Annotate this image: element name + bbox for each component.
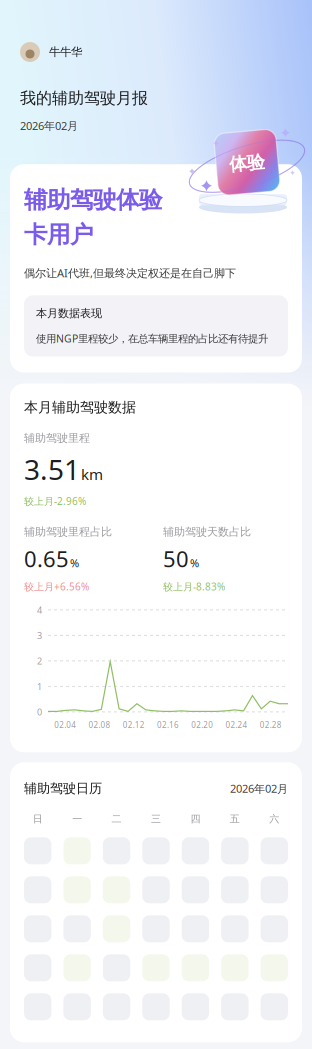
- staticText: 较上月-2.96%: [24, 494, 86, 508]
- staticText: km: [81, 464, 103, 484]
- staticText: 2: [37, 655, 42, 667]
- staticText: 卡用户: [24, 220, 93, 249]
- staticText: 辅助驾驶里程: [24, 431, 90, 445]
- staticText: %: [190, 555, 199, 571]
- staticText: 0: [37, 706, 42, 718]
- staticText: 四: [190, 813, 200, 825]
- staticText: 体验: [229, 152, 265, 175]
- staticText: 0.65: [24, 544, 69, 574]
- staticText: 2026年02月: [230, 781, 288, 796]
- staticText: 偶尔让AI代班,但最终决定权还是在自己脚下: [24, 265, 236, 280]
- staticText: 1: [37, 680, 42, 692]
- staticText: 本月辅助驾驶数据: [24, 398, 136, 416]
- staticText: 02.24: [226, 719, 248, 730]
- staticText: 02.16: [157, 719, 179, 730]
- button[interactable]: 牛牛华: [20, 42, 292, 62]
- staticText: 2026年02月: [20, 118, 78, 133]
- staticText: 02.28: [260, 719, 282, 730]
- staticText: 50: [163, 544, 189, 574]
- staticText: 较上月+6.56%: [24, 580, 89, 593]
- staticText: 辅助驾驶体验: [24, 185, 162, 215]
- staticText: 辅助驾驶里程占比: [24, 525, 112, 539]
- staticText: 02.08: [88, 719, 110, 730]
- staticText: 较上月-8.83%: [163, 580, 225, 593]
- staticText: 4: [37, 604, 42, 616]
- staticText: 3: [37, 629, 42, 641]
- staticText: 三: [151, 813, 161, 825]
- staticText: 辅助驾驶天数占比: [163, 525, 251, 539]
- staticText: 日: [33, 813, 43, 825]
- staticText: 我的辅助驾驶月报: [20, 88, 148, 108]
- staticText: 使用NGP里程较少，在总车辆里程的占比还有待提升: [36, 331, 268, 346]
- staticText: 辅助驾驶日历: [24, 780, 102, 797]
- staticText: 六: [269, 813, 279, 825]
- staticText: 牛牛华: [49, 45, 82, 59]
- staticText: 02.12: [123, 719, 145, 730]
- staticText: 02.04: [54, 719, 76, 730]
- staticText: 一: [72, 813, 82, 825]
- staticText: 3.51: [24, 450, 80, 488]
- staticText: 二: [112, 813, 122, 825]
- staticText: %: [70, 555, 79, 571]
- staticText: 02.20: [191, 719, 213, 730]
- staticText: 本月数据表现: [36, 306, 102, 320]
- staticText: 五: [230, 813, 240, 825]
